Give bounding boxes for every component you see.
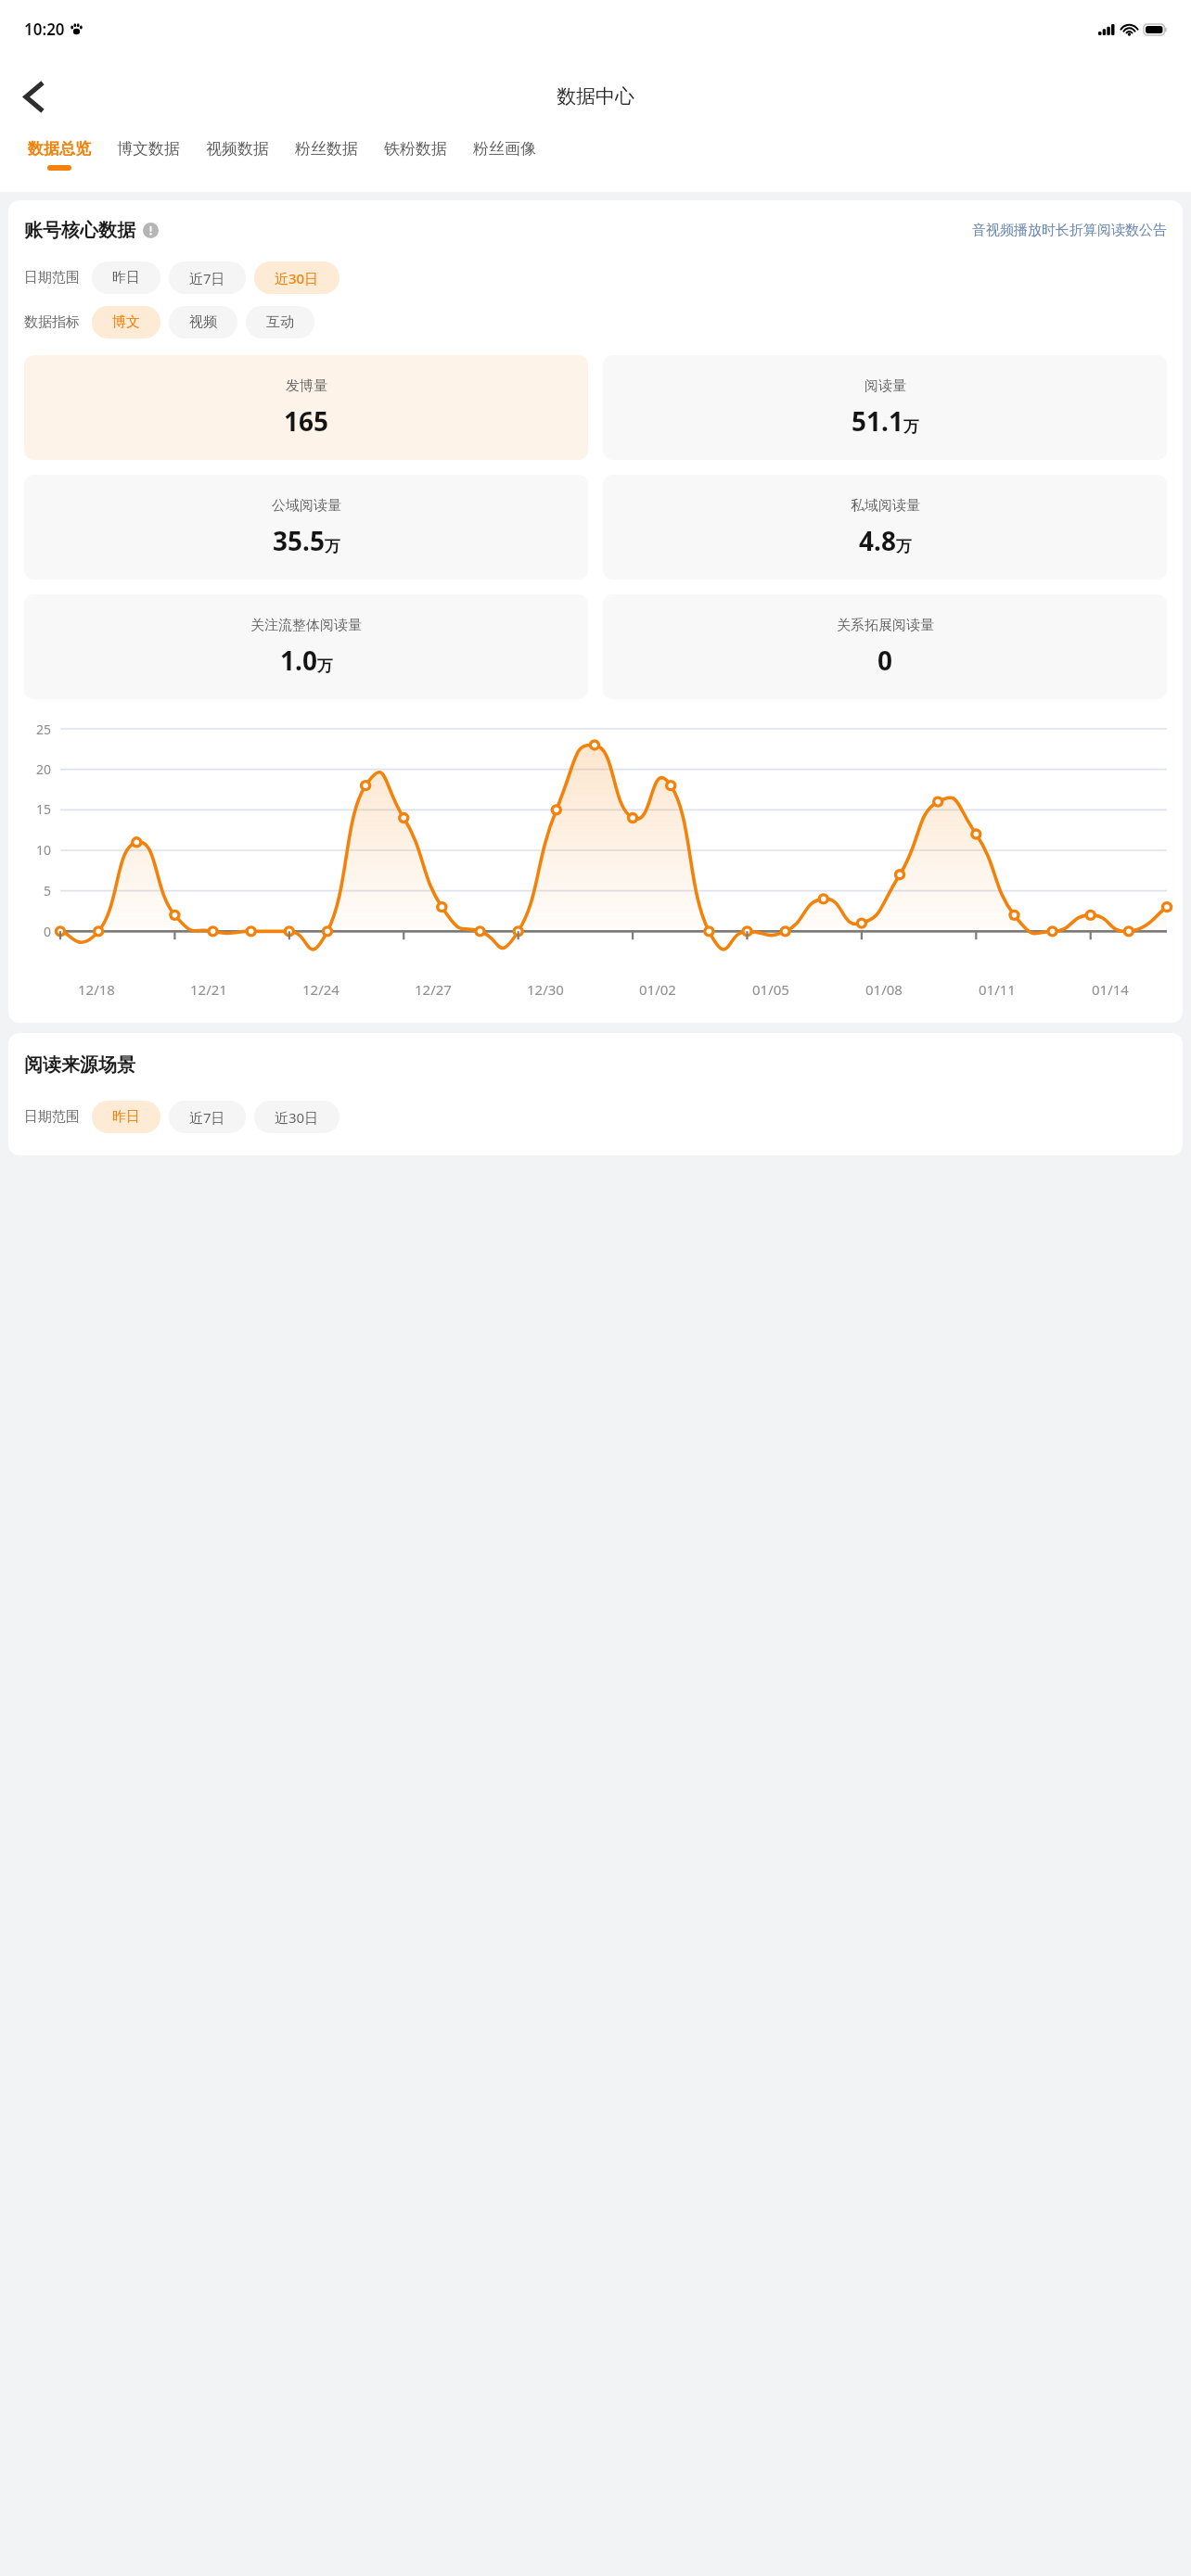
button[interactable]: 近7日 [169, 1101, 246, 1133]
staticText: 10 [36, 841, 52, 859]
staticText: 万 [903, 417, 919, 437]
staticText: 音视频播放时长折算阅读数公告 [972, 222, 1167, 239]
button[interactable]: 音视频播放时长折算阅读数公告 [972, 222, 1167, 239]
button[interactable]: 粉丝画像 [460, 134, 549, 192]
staticText: 数据中心 [557, 84, 634, 108]
staticText: 博文数据 [117, 139, 180, 159]
staticText: 4.8 [859, 523, 896, 558]
button[interactable]: 数据总览 [15, 134, 104, 192]
staticText: 10:20 [24, 19, 65, 40]
button[interactable]: 粉丝数据 [282, 134, 371, 192]
button[interactable]: 关注流整体阅读量 [24, 594, 588, 699]
button[interactable]: 私域阅读量 [603, 475, 1167, 580]
button[interactable]: 视频数据 [193, 134, 282, 192]
staticText: 数据指标 [24, 313, 80, 331]
staticText: 公域阅读量 [272, 497, 341, 515]
staticText: 近7日 [189, 1108, 225, 1127]
staticText: 粉丝画像 [473, 139, 536, 159]
staticText: 粉丝数据 [295, 139, 358, 159]
staticText: 0 [877, 643, 893, 678]
staticText: 博文 [112, 313, 140, 331]
staticText: 昨日 [112, 1108, 140, 1126]
staticText: 视频 [189, 313, 217, 331]
staticText: 0 [44, 923, 52, 940]
button[interactable]: 近7日 [169, 261, 246, 294]
staticText: 关系拓展阅读量 [837, 617, 934, 634]
staticText: 万 [317, 657, 333, 676]
button[interactable]: 公域阅读量 [24, 475, 588, 580]
staticText: 近7日 [189, 269, 225, 287]
staticText: 12/30 [527, 980, 564, 999]
staticText: 铁粉数据 [384, 139, 447, 159]
staticText: 私域阅读量 [851, 497, 920, 515]
staticText: 视频数据 [206, 139, 269, 159]
staticText: 近30日 [275, 269, 319, 287]
staticText: 近30日 [275, 1108, 319, 1127]
staticText: 发博量 [286, 377, 327, 395]
button[interactable]: 昨日 [92, 1101, 160, 1133]
staticText: 阅读量 [864, 377, 906, 395]
staticText: 5 [44, 882, 52, 899]
button[interactable]: 昨日 [92, 261, 160, 294]
staticText: 165 [284, 403, 329, 439]
button[interactable]: 视频 [169, 306, 237, 338]
staticText: 万 [325, 537, 340, 556]
staticText: 12/27 [415, 980, 452, 999]
staticText: 01/02 [639, 980, 676, 999]
staticText: 12/24 [302, 980, 339, 999]
staticText: 01/08 [865, 980, 903, 999]
staticText: 日期范围 [24, 1108, 80, 1126]
staticText: 账号核心数据 [24, 219, 135, 242]
staticText: 互动 [266, 313, 294, 331]
button[interactable]: 近30日 [254, 1101, 339, 1133]
staticText: 25 [36, 721, 52, 738]
staticText: 日期范围 [24, 269, 80, 287]
button[interactable]: 发博量 [24, 355, 588, 460]
staticText: 01/05 [752, 980, 789, 999]
staticText: 万 [896, 537, 912, 556]
staticText: 数据总览 [28, 139, 91, 159]
staticText: 15 [36, 800, 52, 818]
button[interactable]: 阅读量 [603, 355, 1167, 460]
button[interactable]: Back [13, 76, 54, 117]
button[interactable]: 互动 [246, 306, 314, 338]
button[interactable]: 博文 [92, 306, 160, 338]
button[interactable]: 账号核心数据 [24, 219, 159, 242]
staticText: 阅读来源场景 [24, 1053, 135, 1077]
staticText: 51.1 [852, 403, 903, 439]
button[interactable]: 关系拓展阅读量 [603, 594, 1167, 699]
button[interactable]: 铁粉数据 [371, 134, 460, 192]
staticText: 01/11 [979, 980, 1016, 999]
staticText: 12/18 [78, 980, 115, 999]
staticText: 20 [36, 760, 52, 778]
staticText: 昨日 [112, 269, 140, 287]
staticText: 01/14 [1092, 980, 1129, 999]
button[interactable]: 近30日 [254, 261, 339, 294]
staticText: 1.0 [280, 643, 317, 678]
button[interactable]: 博文数据 [104, 134, 193, 192]
staticText: 35.5 [273, 523, 325, 558]
staticText: 12/21 [190, 980, 227, 999]
staticText: 关注流整体阅读量 [250, 617, 362, 634]
